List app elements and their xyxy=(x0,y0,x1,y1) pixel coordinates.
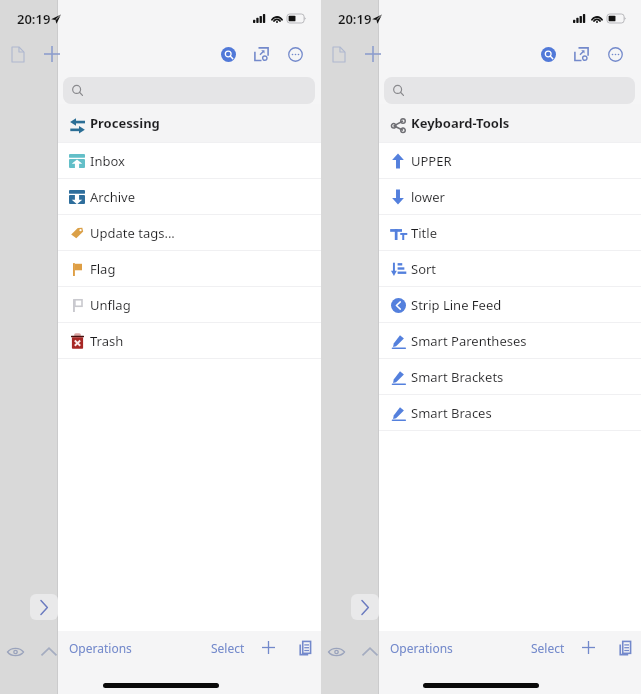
button[interactable]: UPPER xyxy=(379,143,641,178)
button[interactable]: Archive xyxy=(58,179,321,214)
staticText: Operations xyxy=(390,640,453,656)
button[interactable] xyxy=(63,77,315,104)
button[interactable]: Add xyxy=(35,37,68,71)
button[interactable]: Smart Parentheses xyxy=(379,323,641,358)
button[interactable]: Sort xyxy=(379,251,641,286)
button[interactable]: Flag xyxy=(58,251,321,286)
button[interactable]: Keyboard-Tools xyxy=(379,104,641,142)
button[interactable]: Operations xyxy=(69,637,132,658)
button[interactable]: Preview xyxy=(324,639,349,664)
button[interactable]: Unflag xyxy=(58,287,321,322)
button[interactable]: Collapse xyxy=(36,639,61,664)
button[interactable]: Smart Brackets xyxy=(379,359,641,394)
button[interactable]: Resize xyxy=(567,40,595,68)
button[interactable]: Expand sidebar xyxy=(30,594,58,620)
button[interactable]: Select xyxy=(211,637,245,658)
button[interactable] xyxy=(384,77,635,104)
button[interactable]: More options xyxy=(281,40,309,68)
button[interactable]: Resize xyxy=(247,40,275,68)
staticText: Keyboard-Tools xyxy=(411,114,510,132)
staticText: Sort xyxy=(411,260,437,278)
button[interactable]: Documents xyxy=(613,637,634,658)
button[interactable]: Search xyxy=(214,40,242,68)
button[interactable]: lower xyxy=(379,179,641,214)
button[interactable]: New document xyxy=(0,37,35,71)
button[interactable]: Operations xyxy=(390,637,453,658)
button[interactable]: Add xyxy=(258,637,279,658)
staticText: Trash xyxy=(90,332,124,350)
staticText: Unflag xyxy=(90,296,131,314)
staticText: Archive xyxy=(90,188,135,206)
staticText: Inbox xyxy=(90,152,125,170)
staticText: UPPER xyxy=(411,152,452,170)
button[interactable]: Search xyxy=(534,40,562,68)
button[interactable]: Title xyxy=(379,215,641,250)
button[interactable]: Select xyxy=(531,637,565,658)
button[interactable]: Add xyxy=(356,37,389,71)
staticText: Processing xyxy=(90,114,160,132)
staticText: Flag xyxy=(90,260,116,278)
staticText: Strip Line Feed xyxy=(411,296,502,314)
button[interactable]: More options xyxy=(601,40,629,68)
button[interactable]: Documents xyxy=(293,637,314,658)
button[interactable]: Inbox xyxy=(58,143,321,178)
button[interactable]: Preview xyxy=(3,639,28,664)
staticText: 20:19 xyxy=(338,10,372,28)
button[interactable]: Smart Braces xyxy=(379,395,641,430)
staticText: lower xyxy=(411,188,445,206)
button[interactable]: Processing xyxy=(58,104,321,142)
staticText: Select xyxy=(211,640,245,656)
button[interactable]: Update tags... xyxy=(58,215,321,250)
button[interactable]: Collapse xyxy=(357,639,382,664)
staticText: Update tags... xyxy=(90,224,175,242)
button[interactable]: Trash xyxy=(58,323,321,358)
button[interactable]: Expand sidebar xyxy=(351,594,379,620)
button[interactable]: Strip Line Feed xyxy=(379,287,641,322)
staticText: Smart Parentheses xyxy=(411,332,527,350)
staticText: Select xyxy=(531,640,565,656)
staticText: 20:19 xyxy=(17,10,51,28)
staticText: Operations xyxy=(69,640,132,656)
staticText: Smart Brackets xyxy=(411,368,504,386)
button[interactable]: Add xyxy=(578,637,599,658)
staticText: Title xyxy=(411,224,437,242)
button[interactable]: New document xyxy=(321,37,356,71)
staticText: Smart Braces xyxy=(411,404,492,422)
